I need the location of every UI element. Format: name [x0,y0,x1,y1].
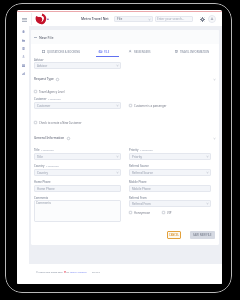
button[interactable]: Menu [18,13,31,25]
button[interactable]: Home Phone [34,185,121,192]
staticText: Honeymoon [134,211,151,215]
button[interactable]: SAVE NEW FILE [190,231,215,239]
button[interactable]: Title [34,153,121,160]
staticText: Comments [36,201,51,205]
button[interactable]: General Information [31,134,219,142]
staticText: Mobile Phone [132,187,151,191]
staticText: FILE [104,50,110,54]
staticText: * Required [48,97,61,100]
button[interactable]: TRAVEL INFORMATION [175,45,210,58]
button[interactable]: Travel Agency Level [34,89,65,94]
button[interactable]: Request Type [31,75,219,83]
button[interactable]: Files [19,37,27,44]
button[interactable]: PASSENGERS [129,45,151,58]
staticText: Title [34,148,40,152]
staticText: PASSENGERS [134,50,151,54]
button[interactable]: VIP [162,210,172,215]
staticText: © Metro 360 made with [36,270,64,273]
staticText: by [66,270,70,273]
staticText: * Required [140,148,153,151]
button[interactable]: Comments [34,200,121,222]
staticText: Referral From [132,202,151,206]
staticText: Metro Systems [70,270,87,273]
staticText: Referral Source [132,171,153,175]
staticText: File [117,17,123,21]
button[interactable]: Enter your search... [155,16,193,22]
staticText: Country [37,171,48,175]
staticText: VIP [167,211,172,215]
staticText: * Required [41,148,54,151]
staticText: Priority [129,148,139,152]
staticText: Home Phone [34,180,51,184]
button[interactable]: Check to create a New Customer [34,120,82,125]
button[interactable]: Advisor [34,62,121,69]
staticText: QUOTATIONS & BOOKING [47,50,81,54]
button[interactable]: Clients [19,53,27,60]
staticText: Customer [34,97,47,101]
button[interactable]: Settings [198,15,206,23]
staticText: TRAVEL INFORMATION [180,50,210,54]
button[interactable]: QUOTATIONS & BOOKING [42,45,81,58]
button[interactable]: New File [34,34,54,40]
staticText: Referral From [129,196,147,200]
button[interactable]: CANCEL [167,231,181,239]
staticText: General Information [34,136,65,140]
button[interactable]: Referral From [129,200,211,207]
staticText: Customer [37,104,51,108]
staticText: Country [34,164,45,168]
staticText: v2.10.4 [92,270,100,273]
button[interactable]: Country [34,169,121,176]
staticText: New File [39,35,54,40]
staticText: Home Phone [37,187,55,191]
button[interactable]: File [114,16,153,22]
staticText: Referral Source [129,164,149,168]
button[interactable]: Referral Source [129,169,211,176]
button[interactable]: Home [19,28,27,35]
staticText: Travel Agency Level [39,90,65,94]
staticText: * Required [46,164,59,167]
button[interactable]: Honeymoon [129,210,151,215]
staticText: Mobile Phone [129,180,147,184]
staticText: Advisor [34,58,44,62]
button[interactable]: Calendar [19,62,27,69]
button[interactable]: Customer [34,102,121,109]
staticText: SAVE NEW FILE [193,233,212,237]
staticText: Enter your search... [157,17,185,21]
button[interactable]: Customer is a passenger [129,103,167,108]
staticText: CANCEL [169,233,179,237]
staticText: Comments [34,196,49,200]
staticText: Priority [132,155,142,159]
button[interactable]: FILE [99,45,110,58]
button[interactable]: Reports [19,45,27,52]
button[interactable]: Mobile Phone [129,185,211,192]
staticText: Customer is a passenger [134,104,167,108]
button[interactable]: Priority [129,153,211,160]
button[interactable]: Analytics [19,70,27,77]
staticText: Metro Travel Net [81,16,109,20]
staticText: Advisor [37,64,48,68]
staticText: Check to create a New Customer [39,121,82,125]
button[interactable]: Profile [208,15,216,23]
staticText: Request Type [34,77,54,81]
staticText: Title [37,155,43,159]
